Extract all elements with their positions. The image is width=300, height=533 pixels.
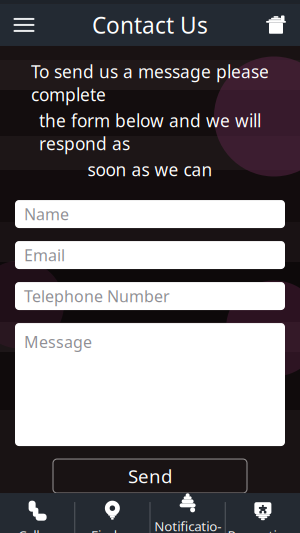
staticText: Send	[128, 464, 172, 488]
staticText: Message	[24, 331, 92, 352]
staticText: Telephone Number	[24, 285, 170, 307]
button[interactable]: Call us	[0, 493, 74, 533]
button[interactable]: Menu	[2, 4, 46, 46]
staticText: the form below and we will respond as	[39, 109, 261, 155]
staticText: Call us	[18, 526, 56, 533]
staticText: To send us a message please complete	[31, 60, 269, 106]
staticText: Find us	[91, 526, 134, 533]
button[interactable]: Send	[53, 459, 247, 493]
staticText: Contact Us	[92, 10, 208, 40]
staticText: Promotions	[227, 526, 298, 533]
staticText: Notifications	[154, 517, 221, 533]
staticText: Email	[24, 244, 65, 266]
button[interactable]: Promotions	[226, 493, 300, 533]
staticText: Name	[24, 203, 69, 225]
button[interactable]: Notifications	[150, 493, 225, 533]
button[interactable]: Find us	[75, 493, 149, 533]
staticText: soon as we can	[87, 158, 212, 181]
button[interactable]: Home	[254, 4, 298, 46]
